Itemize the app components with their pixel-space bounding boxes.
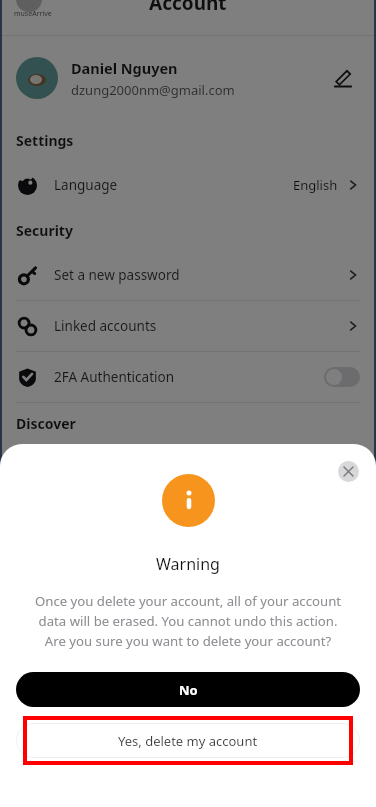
button[interactable]: 2FA Authentication xyxy=(0,352,376,402)
button[interactable]: Yes, delete my account xyxy=(16,723,360,758)
staticText: museArrive xyxy=(14,9,52,19)
staticText: Discover xyxy=(16,414,76,433)
staticText: Warning xyxy=(156,553,220,575)
staticText: No xyxy=(179,681,198,699)
staticText: Daniel Nguyen xyxy=(71,58,178,78)
staticText: Language xyxy=(54,176,293,194)
button[interactable]: Close xyxy=(338,461,359,482)
button[interactable]: 2FA Authentication toggle xyxy=(324,367,360,387)
button[interactable]: Linked accounts xyxy=(0,301,376,351)
button[interactable]: Edit profile xyxy=(326,61,360,95)
staticText: Once you delete your account, all of you… xyxy=(30,592,346,650)
staticText: dzung2000nm@gmail.com xyxy=(71,81,235,99)
staticText: 2FA Authentication xyxy=(54,368,324,386)
staticText: Set a new password xyxy=(54,266,346,284)
staticText: Security xyxy=(16,221,73,240)
staticText: Account xyxy=(149,0,227,16)
staticText: Settings xyxy=(16,131,74,150)
button[interactable]: Language xyxy=(0,160,376,210)
button[interactable]: Set a new password xyxy=(0,250,376,300)
staticText: Yes, delete my account xyxy=(118,732,258,750)
button[interactable]: No xyxy=(16,672,360,707)
staticText: Linked accounts xyxy=(54,317,346,335)
staticText: English xyxy=(293,176,338,194)
button[interactable]: Daniel Nguyen xyxy=(0,36,376,120)
